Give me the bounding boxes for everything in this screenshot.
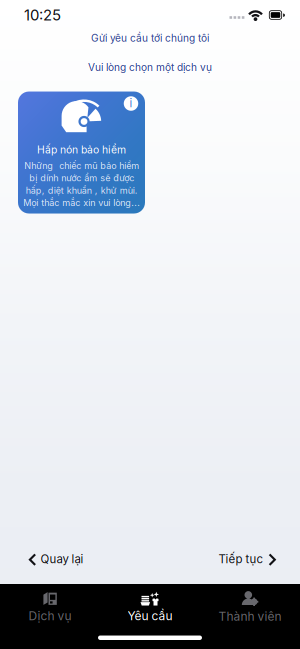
button[interactable]: Quay lại bbox=[24, 546, 88, 572]
button[interactable]: Thành viên bbox=[200, 584, 300, 627]
staticText: Gửi yêu cầu tới chúng tôi bbox=[91, 32, 209, 44]
staticText: Tiếp tục bbox=[218, 552, 263, 566]
button[interactable]: Yêu cầu bbox=[100, 584, 200, 627]
staticText: Yêu cầu bbox=[127, 608, 172, 623]
staticText: 10:25 bbox=[24, 6, 61, 24]
button[interactable]: i bbox=[18, 91, 145, 213]
button[interactable]: Dịch vụ bbox=[0, 584, 100, 627]
staticText: Hấp nón bảo hiểm bbox=[37, 143, 126, 156]
button[interactable]: Tiếp tục bbox=[214, 546, 280, 572]
staticText: Quay lại bbox=[41, 552, 84, 566]
staticText: Những chiếc mũ bảo hiểm bị dính nước ẩm … bbox=[23, 160, 140, 208]
staticText: Dịch vụ bbox=[28, 608, 71, 623]
button[interactable]: Thông tin dịch vụ bbox=[120, 92, 142, 114]
staticText: i bbox=[129, 96, 132, 110]
staticText: Thành viên bbox=[218, 609, 281, 623]
staticText: Vui lòng chọn một dịch vụ bbox=[88, 61, 212, 74]
